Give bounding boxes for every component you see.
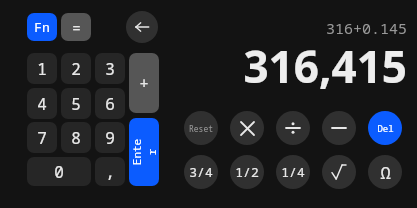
button[interactable]: Fn (27, 13, 57, 41)
button[interactable]: 5 (61, 88, 91, 119)
button[interactable]: 1/2 (230, 155, 264, 189)
button[interactable]: = (61, 13, 91, 41)
staticText: 316,415 (243, 36, 407, 96)
button[interactable]: Multiply (230, 111, 264, 145)
staticText: 9 (105, 127, 115, 149)
staticText: = (72, 18, 81, 37)
staticText: Enter (129, 137, 159, 167)
button[interactable]: Square root (322, 155, 356, 189)
button[interactable]: + (129, 53, 159, 113)
staticText: 6 (105, 93, 115, 115)
staticText: 4 (37, 93, 47, 115)
button[interactable]: Minus (322, 111, 356, 145)
staticText: Del (377, 122, 394, 134)
staticText: 316+0.145 (325, 18, 407, 38)
button[interactable]: Reset (184, 111, 218, 145)
staticText: 0 (54, 161, 64, 183)
staticText: 1 (37, 58, 47, 80)
button[interactable]: Backspace (126, 11, 158, 43)
staticText: Ω (380, 161, 391, 184)
button[interactable]: Ω (368, 155, 402, 189)
button[interactable]: 3 (95, 53, 125, 84)
button[interactable]: 9 (95, 122, 125, 153)
button[interactable]: Divide (276, 111, 310, 145)
button[interactable]: Enter (129, 118, 159, 186)
staticText: 3 (105, 58, 115, 80)
button[interactable]: 8 (61, 122, 91, 153)
staticText: 2 (71, 58, 81, 80)
button[interactable]: 0 (27, 157, 91, 186)
staticText: 1/4 (281, 163, 305, 181)
staticText: Reset (189, 123, 213, 134)
staticText: 8 (71, 127, 81, 149)
button[interactable]: , (95, 157, 125, 186)
button[interactable]: 3/4 (184, 155, 218, 189)
button[interactable]: 1/4 (276, 155, 310, 189)
button[interactable]: 2 (61, 53, 91, 84)
staticText: 3/4 (189, 163, 213, 181)
button[interactable]: Del (368, 111, 402, 145)
staticText: 7 (37, 127, 47, 149)
button[interactable]: 7 (27, 122, 57, 153)
staticText: Fn (34, 18, 50, 36)
button[interactable]: 6 (95, 88, 125, 119)
button[interactable]: 4 (27, 88, 57, 119)
staticText: , (105, 161, 115, 183)
staticText: 5 (71, 93, 81, 115)
staticText: 1/2 (235, 163, 259, 181)
staticText: + (139, 72, 149, 94)
button[interactable]: 1 (27, 53, 57, 84)
